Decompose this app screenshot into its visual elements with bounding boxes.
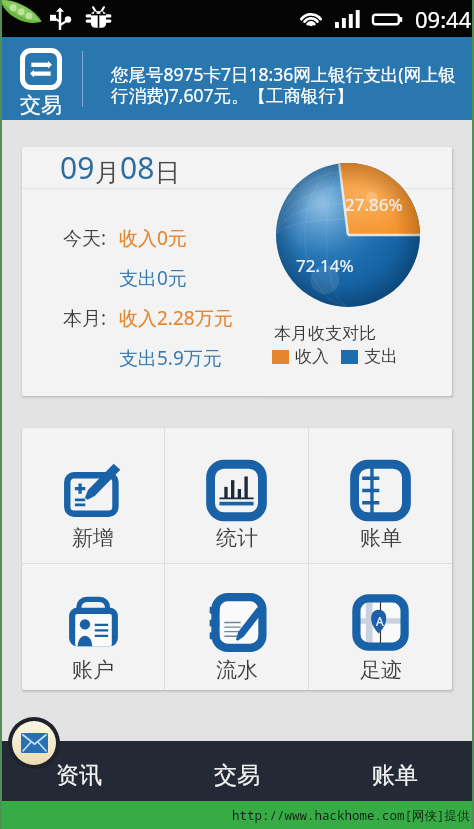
staticText: 资讯 [56, 761, 102, 790]
staticText: 日 [155, 157, 180, 188]
button[interactable]: 交易 [0, 37, 82, 120]
staticText: 09 [60, 147, 95, 188]
staticText: 统计 [216, 525, 258, 551]
staticText: 足迹 [360, 657, 402, 683]
staticText: 收入 [295, 346, 329, 367]
staticText: 流水 [216, 657, 258, 683]
staticText: 账单 [360, 525, 402, 551]
staticText: 本月: [63, 305, 107, 331]
staticText: 支出 [364, 346, 398, 367]
staticText: 收入0元 [119, 225, 187, 251]
staticText: 账单 [372, 761, 418, 790]
staticText: 您尾号8975卡7日18:36网上银行支出(网上银行消费)7,607元。【工商银… [111, 62, 468, 108]
button[interactable]: 资讯 [8, 717, 60, 769]
button[interactable]: 交易 [158, 741, 316, 801]
staticText: 27.86% [345, 193, 403, 216]
staticText: 本月收支对比 [274, 323, 376, 344]
staticText: A [376, 613, 384, 629]
staticText: 08 [120, 147, 155, 188]
staticText: 09:44 [415, 4, 472, 34]
staticText: 支出0元 [119, 265, 187, 291]
staticText: 今天: [63, 225, 107, 251]
staticText: 交易 [20, 92, 62, 118]
button[interactable]: 新增 [22, 428, 164, 563]
button[interactable]: 统计 [165, 428, 308, 563]
button[interactable]: 账单 [309, 428, 452, 563]
button[interactable]: 账单 [316, 741, 474, 801]
staticText: 月 [95, 157, 120, 188]
staticText: 72.14% [296, 254, 354, 277]
staticText: 账户 [72, 657, 114, 683]
button[interactable]: 账户 [22, 564, 164, 690]
staticText: http://www.hackhome.com[网侠]提供 [232, 807, 470, 824]
staticText: 交易 [214, 761, 260, 790]
button[interactable]: 资讯 [0, 741, 158, 801]
button[interactable]: 流水 [165, 564, 308, 690]
staticText: 收入2.28万元 [119, 305, 233, 331]
staticText: 新增 [72, 525, 114, 551]
staticText: 支出5.9万元 [119, 345, 222, 371]
button[interactable]: A [309, 564, 452, 690]
